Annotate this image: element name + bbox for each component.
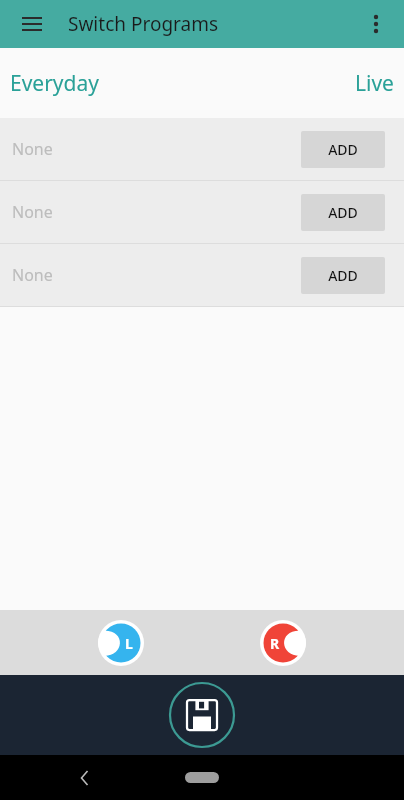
- staticText: Everyday: [10, 69, 99, 98]
- staticText: L: [125, 634, 133, 653]
- staticText: None: [12, 264, 301, 286]
- staticText: Live: [355, 69, 394, 98]
- staticText: R: [270, 634, 280, 653]
- button[interactable]: None: [0, 118, 404, 180]
- button[interactable]: Everyday: [10, 48, 99, 118]
- button[interactable]: More options: [356, 4, 396, 44]
- staticText: None: [12, 138, 301, 160]
- button[interactable]: Back: [70, 763, 100, 793]
- button[interactable]: Live: [355, 48, 394, 118]
- button[interactable]: ADD: [301, 131, 385, 168]
- staticText: ADD: [328, 203, 358, 222]
- button[interactable]: Menu: [12, 4, 52, 44]
- staticText: ADD: [328, 266, 358, 285]
- button[interactable]: None: [0, 181, 404, 243]
- button[interactable]: Home: [185, 772, 219, 783]
- staticText: Switch Programs: [68, 11, 219, 37]
- button[interactable]: Save: [167, 680, 237, 750]
- button[interactable]: ADD: [301, 257, 385, 294]
- button[interactable]: None: [0, 244, 404, 306]
- button[interactable]: Right device: [257, 617, 309, 669]
- staticText: None: [12, 201, 301, 223]
- button[interactable]: Left device: [95, 617, 147, 669]
- staticText: ADD: [328, 140, 358, 159]
- button[interactable]: ADD: [301, 194, 385, 231]
